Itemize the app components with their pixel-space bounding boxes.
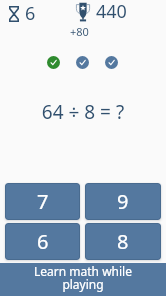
button[interactable]: 7: [5, 183, 80, 220]
staticText: +80: [70, 24, 89, 39]
button[interactable]: 8: [85, 223, 161, 260]
staticText: Learn math while playing: [31, 263, 135, 293]
staticText: 6: [37, 228, 49, 255]
staticText: 6: [25, 1, 36, 26]
button[interactable]: 6: [5, 223, 80, 260]
staticText: 8: [117, 228, 129, 255]
button[interactable]: 9: [85, 183, 161, 220]
staticText: 7: [37, 188, 49, 215]
button[interactable]: Learn math while playing: [0, 263, 166, 296]
staticText: 9: [117, 188, 129, 215]
staticText: 440: [96, 0, 127, 24]
staticText: 64 ÷ 8 = ?: [0, 99, 166, 125]
